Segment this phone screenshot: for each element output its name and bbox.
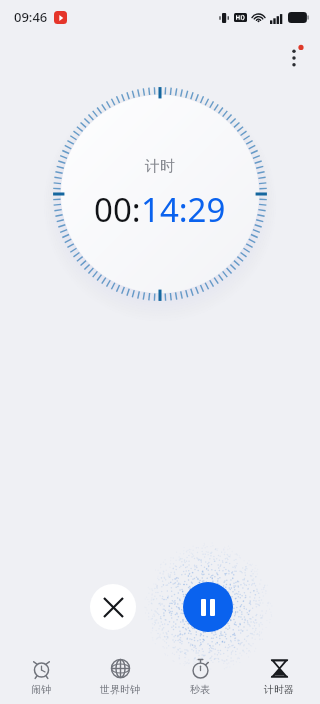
button[interactable]: Cancel timer (90, 584, 136, 630)
button[interactable]: More options (276, 38, 316, 78)
staticText: 14:29 (141, 187, 226, 232)
staticText: 秒表 (190, 683, 210, 696)
button[interactable]: 世界时钟 (82, 650, 158, 704)
staticText: 00: (94, 187, 141, 232)
button[interactable]: 计时器 (241, 650, 317, 704)
button[interactable]: Pause timer (183, 582, 233, 632)
staticText: 09:46 (14, 8, 48, 26)
button[interactable]: 闹钟 (3, 650, 79, 704)
staticText: 计时 (145, 157, 175, 176)
button[interactable]: 秒表 (162, 650, 238, 704)
staticText: 闹钟 (31, 683, 51, 696)
staticText: 世界时钟 (100, 683, 140, 696)
staticText: 计时器 (264, 683, 294, 696)
